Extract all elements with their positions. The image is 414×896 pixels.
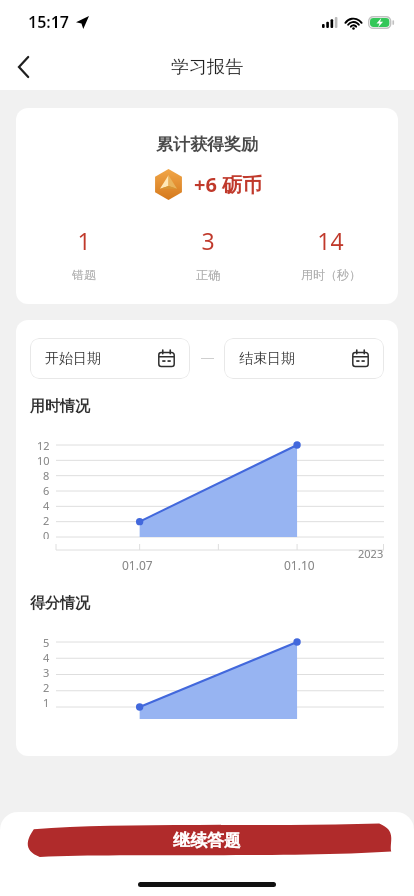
staticText: 继续答题 — [173, 830, 241, 851]
staticText: 用时（秒） — [301, 267, 361, 282]
staticText: 15:17 — [28, 11, 70, 33]
staticText: +6 砺币 — [194, 171, 263, 198]
button[interactable]: 结束日期 — [224, 338, 384, 379]
staticText: 01.07 — [122, 557, 153, 572]
staticText: 得分情况 — [30, 594, 90, 613]
staticText: 2023 — [358, 546, 384, 561]
button[interactable]: 开始日期 — [30, 338, 190, 379]
staticText: 累计获得奖励 — [156, 134, 258, 155]
staticText: 4 — [43, 498, 50, 513]
staticText: 8 — [43, 468, 50, 483]
staticText: 6 — [43, 483, 50, 498]
staticText: 结束日期 — [239, 350, 295, 368]
staticText: 正确 — [196, 267, 220, 282]
staticText: 12 — [37, 438, 50, 453]
staticText: 2 — [43, 513, 50, 528]
staticText: 1 — [77, 225, 91, 256]
staticText: 01.10 — [284, 557, 315, 572]
staticText: 1 — [43, 695, 50, 709]
staticText: 开始日期 — [45, 350, 101, 368]
staticText: 学习报告 — [171, 56, 243, 79]
staticText: 2 — [43, 680, 50, 695]
staticText: 5 — [43, 635, 50, 650]
staticText: 3 — [43, 665, 50, 680]
button[interactable]: Back — [2, 45, 46, 89]
staticText: 用时情况 — [30, 397, 90, 416]
staticText: 10 — [37, 453, 50, 468]
staticText: 3 — [201, 225, 215, 256]
staticText: 14 — [317, 225, 344, 256]
button[interactable]: 继续答题 — [0, 822, 414, 858]
staticText: 0 — [43, 528, 50, 539]
staticText: 4 — [43, 650, 50, 665]
staticText: 错题 — [72, 267, 96, 282]
